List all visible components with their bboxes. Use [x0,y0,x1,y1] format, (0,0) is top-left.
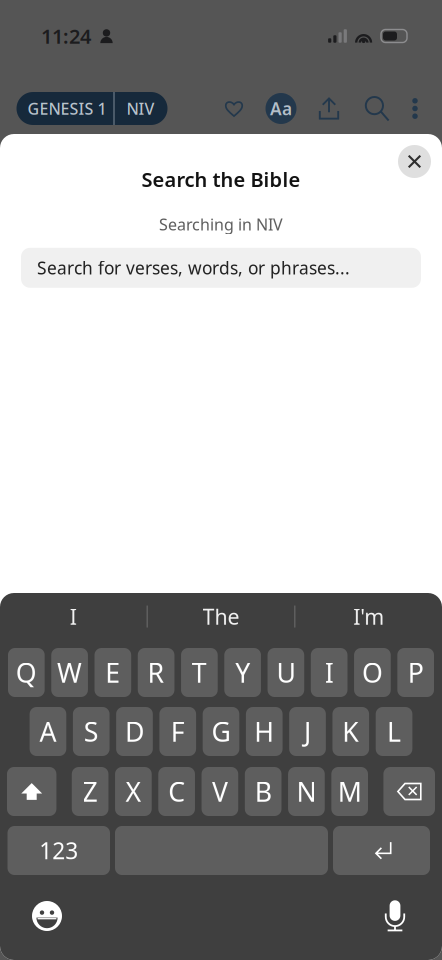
button[interactable]: G [203,707,239,756]
button[interactable]: Emoji [29,899,65,933]
button[interactable]: Shift [7,767,56,816]
button[interactable]: H [246,707,283,756]
button[interactable]: D [116,707,153,756]
button[interactable]: Delete [383,767,435,816]
staticText: 11:24 [41,23,91,49]
button[interactable]: Close [398,145,431,178]
staticText: R [148,655,165,690]
staticText: B [255,774,272,809]
button[interactable]: F [159,707,196,756]
button[interactable]: Share [313,92,345,125]
button[interactable]: The [148,593,294,640]
staticText: O [362,655,383,690]
button[interactable]: Q [8,648,45,697]
button[interactable]: Return [333,826,430,875]
button[interactable]: More [402,92,428,125]
button[interactable]: U [268,648,304,697]
button[interactable]: N [288,767,325,816]
button[interactable]: V [202,767,238,816]
staticText: J [304,714,311,749]
staticText: H [254,714,274,749]
button[interactable]: L [376,707,412,756]
button[interactable]: P [397,648,434,697]
staticText: T [192,655,207,690]
staticText: P [408,655,424,690]
staticText: U [276,655,295,690]
staticText: Y [235,655,250,690]
button[interactable]: B [245,767,281,816]
staticText: N [296,774,316,809]
button[interactable]: GENESIS 1 [16,92,167,125]
button[interactable]: A [30,707,66,756]
staticText: K [342,714,359,749]
staticText: Search for verses, words, or phrases... [37,256,350,279]
staticText: Search the Bible [141,166,300,193]
button[interactable]: Search for verses, words, or phrases... [21,248,421,288]
staticText: 123 [39,835,78,865]
button[interactable]: I'm [295,593,442,640]
button[interactable]: Y [224,648,261,697]
button[interactable]: E [94,648,131,697]
button[interactable]: 123 [7,826,110,875]
button[interactable]: W [51,648,88,697]
staticText: I [70,602,77,631]
staticText: M [338,774,362,809]
button[interactable]: J [289,707,326,756]
staticText: Z [83,774,98,809]
staticText: X [125,774,141,809]
staticText: I'm [353,602,384,631]
staticText: G [211,714,230,749]
button[interactable]: Dictate [377,899,413,933]
staticText: V [212,774,228,809]
staticText: S [84,714,99,749]
button[interactable]: Favorite [218,92,250,125]
staticText: F [171,714,185,749]
staticText: GENESIS 1 [27,98,106,119]
button[interactable]: S [73,707,110,756]
button[interactable]: I [311,648,347,697]
staticText: Q [16,655,37,690]
staticText: Aa [270,97,292,120]
staticText: I [325,655,334,690]
button[interactable]: Search [361,92,393,125]
staticText: Searching in NIV [159,214,283,235]
button[interactable]: K [332,707,369,756]
button[interactable]: Text options [265,92,297,125]
button[interactable]: O [354,648,391,697]
staticText: NIV [126,98,154,119]
staticText: E [105,655,120,690]
staticText: W [57,655,82,690]
button[interactable]: M [331,767,368,816]
button[interactable]: Z [72,767,108,816]
button[interactable]: R [138,648,174,697]
button[interactable]: T [181,648,218,697]
button[interactable]: C [158,767,195,816]
staticText: C [168,774,185,809]
staticText: L [387,714,401,749]
button[interactable]: X [115,767,152,816]
button[interactable]: I [0,593,147,640]
staticText: The [202,602,239,631]
staticText: D [125,714,144,749]
staticText: A [39,714,56,749]
